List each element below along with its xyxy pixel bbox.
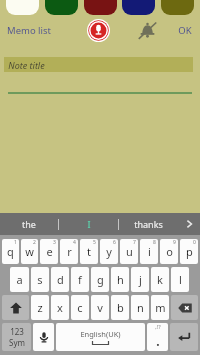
staticText: x — [57, 300, 63, 315]
staticText: Memo list — [7, 24, 51, 37]
staticText: 1 — [14, 239, 17, 246]
button[interactable]: c — [71, 295, 89, 320]
staticText: i — [148, 244, 151, 259]
button[interactable]: English(UK) — [56, 323, 145, 351]
button[interactable]: n — [131, 295, 149, 320]
staticText: f — [78, 272, 82, 287]
staticText: z — [37, 300, 43, 315]
button[interactable]: v — [91, 295, 109, 320]
staticText: h — [117, 272, 124, 287]
button[interactable]: w — [21, 239, 38, 264]
button[interactable]: Note title — [4, 57, 193, 72]
staticText: the — [22, 218, 36, 230]
button[interactable]: thanks — [119, 213, 178, 235]
button[interactable]: i — [140, 239, 158, 264]
staticText: English(UK) — [80, 329, 121, 339]
staticText: ,!? — [155, 323, 161, 330]
staticText: Note title — [8, 59, 45, 71]
button[interactable]: o — [160, 239, 178, 264]
staticText: e — [46, 244, 53, 259]
button[interactable]: q — [2, 239, 19, 264]
button[interactable]: b — [111, 295, 129, 320]
button[interactable]: u — [120, 239, 138, 264]
button[interactable]: Voice record — [86, 18, 110, 42]
staticText: y — [106, 244, 112, 259]
button[interactable]: Reminder off — [134, 17, 160, 43]
button[interactable]: r — [60, 239, 78, 264]
staticText: b — [117, 300, 124, 315]
button[interactable]: Shift — [2, 295, 29, 320]
button[interactable]: t — [80, 239, 98, 264]
button[interactable]: x — [51, 295, 69, 320]
staticText: d — [57, 272, 64, 287]
button[interactable]: d — [51, 267, 69, 292]
button[interactable]: Backspace — [171, 295, 198, 320]
button[interactable]: e — [40, 239, 58, 264]
button[interactable]: m — [151, 295, 169, 320]
staticText: u — [126, 244, 133, 259]
staticText: c — [77, 300, 83, 315]
staticText: 3 — [53, 239, 56, 246]
staticText: v — [97, 300, 103, 315]
button[interactable]: y — [100, 239, 118, 264]
staticText: OK — [178, 24, 192, 37]
staticText: thanks — [134, 218, 163, 230]
button[interactable]: k — [151, 267, 169, 292]
button[interactable]: Enter — [170, 323, 198, 351]
button[interactable]: More suggestions — [178, 213, 200, 235]
button[interactable]: OK — [174, 19, 196, 42]
button[interactable]: Voice input — [33, 323, 54, 351]
staticText: 7 — [133, 239, 136, 246]
staticText: n — [137, 300, 144, 315]
staticText: 0 — [193, 239, 196, 246]
button[interactable]: l — [171, 267, 189, 292]
button[interactable]: g — [91, 267, 109, 292]
button[interactable]: p — [180, 239, 198, 264]
button[interactable]: Colour — [122, 0, 155, 15]
staticText: t — [87, 244, 91, 259]
staticText: r — [67, 244, 72, 259]
staticText: w — [25, 244, 34, 259]
staticText: 6 — [113, 239, 116, 246]
staticText: 9 — [173, 239, 176, 246]
button[interactable]: Colour — [161, 0, 194, 15]
button[interactable]: the — [0, 213, 58, 235]
staticText: l — [179, 272, 182, 287]
button[interactable]: Colour — [84, 0, 117, 15]
button[interactable]: ,!? — [147, 323, 168, 351]
staticText: p — [186, 244, 193, 259]
staticText: 123 — [10, 326, 24, 337]
staticText: 5 — [93, 239, 96, 246]
staticText: . — [156, 333, 160, 349]
staticText: q — [7, 244, 14, 259]
button[interactable]: Memo list — [4, 19, 54, 42]
button[interactable]: s — [31, 267, 49, 292]
button[interactable]: f — [71, 267, 89, 292]
staticText: j — [139, 272, 142, 287]
staticText: 4 — [73, 239, 76, 246]
button[interactable]: Colour — [45, 0, 78, 15]
staticText: 8 — [153, 239, 156, 246]
staticText: s — [37, 272, 43, 287]
staticText: Sym — [9, 337, 25, 348]
staticText: g — [97, 272, 104, 287]
button[interactable]: Colour — [6, 0, 39, 15]
button[interactable]: j — [131, 267, 149, 292]
staticText: o — [166, 244, 173, 259]
staticText: m — [155, 300, 166, 315]
staticText: I — [87, 218, 91, 230]
button[interactable]: z — [31, 295, 49, 320]
staticText: a — [16, 272, 23, 287]
button[interactable]: 123 — [2, 323, 31, 351]
button[interactable]: I — [59, 213, 118, 235]
button[interactable]: a — [10, 267, 29, 292]
button[interactable]: h — [111, 267, 129, 292]
staticText: k — [157, 272, 163, 287]
staticText: 2 — [33, 239, 36, 246]
